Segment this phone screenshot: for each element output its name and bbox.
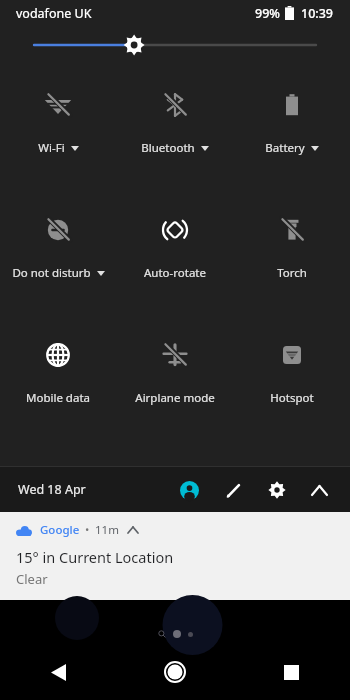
button[interactable]: Brightness bbox=[0, 26, 350, 64]
button[interactable]: Mobile data bbox=[0, 322, 116, 447]
staticText: Airplane mode bbox=[135, 390, 215, 406]
button[interactable]: Airplane mode bbox=[116, 322, 233, 447]
button[interactable]: Hotspot bbox=[233, 322, 350, 447]
staticText: Auto-rotate bbox=[144, 265, 206, 281]
button[interactable]: Auto-rotate bbox=[116, 197, 233, 322]
button[interactable]: Settings bbox=[260, 473, 294, 507]
button[interactable]: Wi-Fi bbox=[0, 72, 116, 197]
button[interactable]: User bbox=[172, 473, 206, 507]
button[interactable]: Edit bbox=[216, 473, 250, 507]
button[interactable]: Battery bbox=[233, 72, 350, 197]
button[interactable]: Do not disturb bbox=[0, 197, 116, 322]
button[interactable]: Back bbox=[0, 644, 116, 700]
staticText: 11m bbox=[95, 522, 119, 538]
button[interactable]: Google bbox=[0, 512, 350, 600]
staticText: Wed 18 Apr bbox=[18, 481, 86, 498]
staticText: Torch bbox=[277, 265, 307, 281]
staticText: 10:39 bbox=[301, 5, 334, 22]
staticText: • bbox=[85, 522, 90, 538]
staticText: vodafone UK bbox=[16, 5, 92, 22]
staticText: Bluetooth bbox=[141, 140, 195, 156]
button[interactable]: Recent apps bbox=[233, 644, 350, 700]
button[interactable]: Home bbox=[116, 644, 233, 700]
button[interactable]: Torch bbox=[233, 197, 350, 322]
button[interactable]: Bluetooth bbox=[116, 72, 233, 197]
staticText: Hotspot bbox=[270, 390, 314, 406]
staticText: Do not disturb bbox=[12, 265, 91, 281]
button[interactable]: Collapse notification bbox=[126, 523, 140, 537]
staticText: Mobile data bbox=[26, 390, 90, 406]
staticText: Wi-Fi bbox=[38, 140, 65, 156]
staticText: 99% bbox=[255, 5, 280, 22]
staticText: 15° in Current Location bbox=[16, 547, 174, 567]
button[interactable]: Collapse bbox=[302, 473, 336, 507]
staticText: Battery bbox=[265, 140, 305, 156]
staticText: Google bbox=[40, 522, 80, 538]
staticText: Clear bbox=[16, 570, 48, 588]
